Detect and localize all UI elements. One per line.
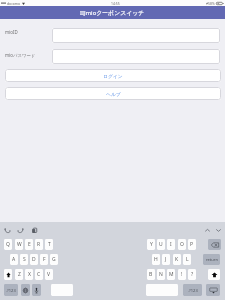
button[interactable]: Text field [52, 49, 220, 64]
button[interactable]: Dictation [32, 284, 41, 296]
button[interactable]: P [188, 239, 196, 250]
button[interactable]: W [15, 239, 23, 250]
staticText: A [12, 256, 16, 263]
button[interactable]: Switch keyboard [21, 284, 30, 296]
staticText: IIJmioクーポンスイッチ [80, 9, 145, 17]
button[interactable]: Undo [3, 226, 12, 235]
button[interactable]: I [167, 239, 175, 250]
button[interactable]: Y [147, 239, 155, 250]
staticText: N [159, 271, 163, 278]
staticText: H [154, 256, 158, 263]
button[interactable]: V [45, 269, 53, 280]
button[interactable]: J [162, 254, 170, 265]
button[interactable]: Hide keyboard [206, 284, 220, 296]
button[interactable]: X [25, 269, 33, 280]
button[interactable]: U [157, 239, 165, 250]
button[interactable]: C [35, 269, 43, 280]
staticText: F [43, 256, 46, 263]
staticText: S [23, 256, 26, 263]
staticText: mioID [5, 29, 18, 35]
staticText: .?123 [188, 288, 198, 293]
staticText: M [169, 271, 174, 278]
button[interactable]: return [203, 254, 220, 265]
button[interactable]: T [45, 239, 53, 250]
staticText: K [175, 256, 179, 263]
button[interactable]: ヘルプ [5, 87, 221, 100]
staticText: B [149, 271, 153, 278]
staticText: W [17, 241, 22, 248]
staticText: ログイン [103, 73, 123, 79]
button[interactable]: L [183, 254, 191, 265]
staticText: J [165, 256, 167, 263]
staticText: docomo [7, 1, 21, 6]
button[interactable]: Previous field [203, 226, 212, 235]
button[interactable]: B [147, 269, 155, 280]
button[interactable]: Paste [30, 226, 39, 235]
staticText: U [159, 241, 163, 248]
button[interactable]: Next field [214, 226, 223, 235]
staticText: 14:55 [111, 1, 120, 6]
staticText: ヘルプ [106, 91, 121, 97]
button[interactable]: N [157, 269, 165, 280]
button[interactable]: .?123 [183, 284, 202, 296]
staticText: E [28, 241, 31, 248]
button[interactable]: G [50, 254, 58, 265]
staticText: mioパスワード [5, 52, 36, 58]
button[interactable]: Backspace [208, 239, 221, 250]
staticText: L [186, 256, 189, 263]
staticText: C [37, 271, 41, 278]
button[interactable]: Z [15, 269, 23, 280]
button[interactable]: D [30, 254, 38, 265]
button[interactable]: H [152, 254, 160, 265]
button[interactable]: M [167, 269, 175, 280]
button[interactable]: .?123 [4, 284, 18, 296]
staticText: ! [181, 271, 183, 278]
staticText: ? [191, 271, 194, 278]
staticText: X [28, 271, 31, 278]
button[interactable]: O [178, 239, 186, 250]
button[interactable]: Shift [4, 269, 12, 280]
staticText: P [190, 241, 194, 248]
staticText: R [37, 241, 41, 248]
staticText: Y [150, 241, 153, 248]
button[interactable]: Text field [52, 28, 220, 43]
staticText: return [206, 257, 218, 262]
staticText: T [48, 241, 51, 248]
staticText: O [180, 241, 184, 248]
button[interactable]: K [173, 254, 181, 265]
button[interactable]: R [35, 239, 43, 250]
button[interactable]: ? [188, 269, 196, 280]
staticText: D [32, 256, 36, 263]
staticText: I [170, 241, 172, 248]
button[interactable]: E [25, 239, 33, 250]
button[interactable]: ログイン [5, 69, 221, 82]
staticText: .?123 [6, 288, 16, 293]
button[interactable]: F [40, 254, 48, 265]
button[interactable]: Redo [16, 226, 25, 235]
button[interactable]: S [20, 254, 28, 265]
button[interactable]: ! [178, 269, 186, 280]
staticText: G [52, 256, 56, 263]
staticText: Q [6, 241, 10, 248]
button[interactable]: Shift [208, 269, 220, 280]
button[interactable]: A [10, 254, 18, 265]
staticText: Z [18, 271, 21, 278]
staticText: V [47, 271, 51, 278]
button[interactable]: Q [4, 239, 12, 250]
staticText: 58% [208, 1, 215, 6]
